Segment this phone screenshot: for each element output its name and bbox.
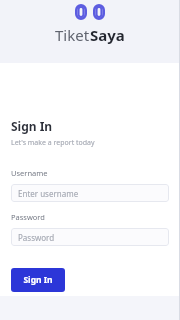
staticText: Saya (90, 25, 125, 45)
staticText: Password (11, 212, 45, 222)
staticText: Let's make a report today (11, 138, 95, 148)
button[interactable]: Password (11, 228, 169, 246)
staticText: Sign In (11, 118, 53, 134)
button[interactable]: Enter username (11, 184, 169, 202)
staticText: Password (18, 232, 55, 243)
staticText: Enter username (18, 188, 79, 199)
button[interactable]: Sign In (11, 268, 65, 292)
staticText: Tiket (55, 25, 90, 45)
other: TiketSaya logo (75, 4, 105, 20)
staticText: Sign In (23, 274, 53, 286)
staticText: Username (11, 168, 48, 178)
